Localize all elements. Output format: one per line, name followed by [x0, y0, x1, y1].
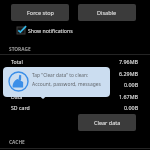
button[interactable]: SD card	[0, 103, 150, 114]
staticText: Total	[11, 58, 23, 65]
staticText: Tap "Clear data" to clean:	[32, 72, 89, 79]
staticText: Account, password, messages	[32, 81, 101, 88]
button[interactable]: Total	[0, 57, 150, 68]
staticText: 6.29MB	[119, 70, 139, 77]
other: Clean	[8, 71, 29, 92]
staticText: App	[11, 70, 21, 77]
staticText: Show notifications	[28, 27, 73, 34]
button[interactable]: USB storage app	[0, 80, 150, 91]
staticText: CACHE	[9, 139, 25, 146]
staticText: Disable	[97, 9, 117, 16]
button[interactable]: Clean	[3, 67, 110, 97]
staticText: Force stop	[27, 9, 54, 16]
button[interactable]: Force stop	[11, 4, 69, 21]
staticText: SD card	[11, 104, 30, 111]
staticText: 0.00B	[124, 81, 139, 88]
staticText: 1.67MB	[119, 93, 139, 100]
staticText: 7.96MB	[119, 58, 139, 65]
button[interactable]: Show notifications	[15, 24, 75, 37]
staticText: Clear data	[94, 119, 121, 126]
staticText: 0.00B	[124, 104, 139, 111]
button[interactable]: Disable	[78, 4, 136, 21]
staticText: USB storage app	[11, 81, 52, 88]
button[interactable]: Data	[0, 92, 150, 103]
button[interactable]: App	[0, 69, 150, 80]
staticText: Data	[11, 93, 23, 100]
button[interactable]: Clear data	[78, 114, 136, 131]
staticText: STORAGE	[9, 46, 31, 53]
